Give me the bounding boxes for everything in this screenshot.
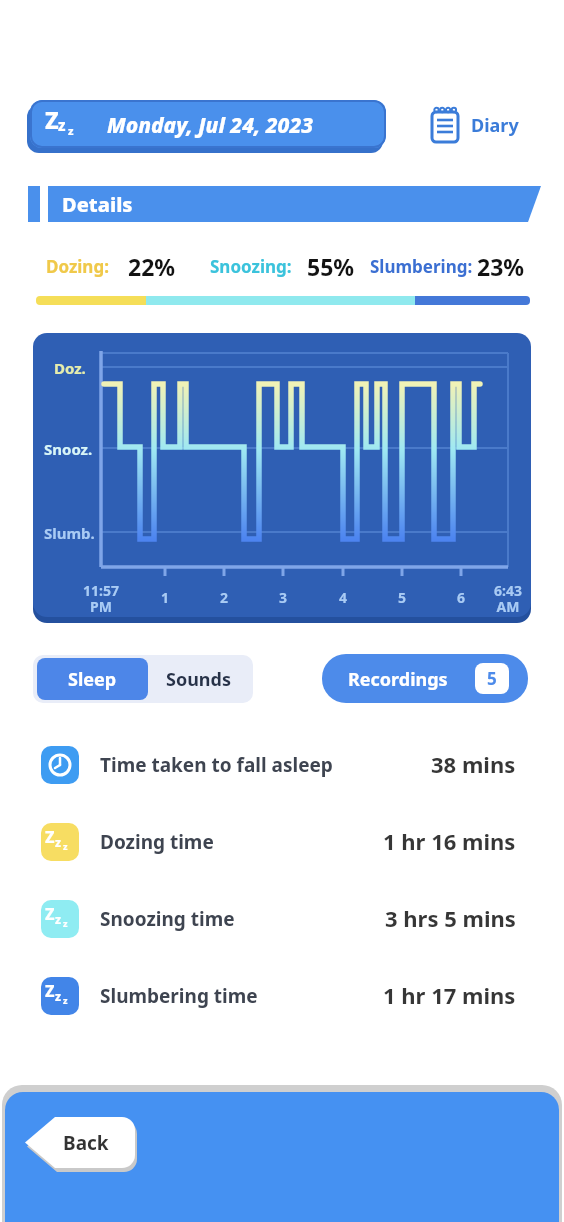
staticText: 3 [273, 588, 293, 607]
staticText: Slumb. [44, 523, 95, 543]
staticText: Z [45, 980, 55, 1002]
button[interactable]: Z [30, 100, 386, 148]
staticText: Back [63, 1130, 109, 1156]
staticText: 4 [333, 588, 353, 607]
staticText: 5 [392, 588, 412, 607]
staticText: Snooz. [44, 439, 93, 459]
staticText: 5 [487, 667, 497, 690]
staticText: 22% [128, 251, 176, 282]
staticText: Z [45, 826, 55, 848]
staticText: Monday, Jul 24, 2023 [70, 111, 350, 140]
staticText: Recordings [348, 667, 448, 692]
staticText: z [63, 917, 68, 929]
button[interactable]: Recordings [322, 654, 528, 703]
staticText: z [68, 123, 74, 138]
staticText: Dozing time [100, 829, 214, 855]
staticText: z [63, 994, 68, 1006]
staticText: z [63, 840, 68, 852]
staticText: PM [79, 597, 123, 616]
staticText: 11:57 [79, 581, 123, 600]
staticText: 1 hr 17 mins [383, 980, 516, 1010]
staticText: 38 mins [431, 749, 516, 779]
staticText: 1 hr 16 mins [383, 826, 516, 856]
staticText: z [55, 834, 61, 850]
staticText: Z [45, 903, 55, 925]
staticText: Details [62, 191, 133, 218]
staticText: z [58, 115, 66, 135]
staticText: Slumbering: [370, 255, 473, 278]
staticText: Snoozing: [210, 255, 292, 278]
button[interactable]: Back [25, 1117, 135, 1168]
button[interactable]: Sleep [37, 658, 148, 700]
staticText: 3 hrs 5 mins [385, 903, 516, 933]
staticText: z [55, 911, 61, 927]
staticText: Snoozing time [100, 906, 235, 932]
staticText: 2 [214, 588, 234, 607]
staticText: 23% [477, 251, 525, 282]
staticText: Slumbering time [100, 983, 258, 1009]
staticText: Z [45, 104, 59, 135]
staticText: Sleep [68, 667, 117, 692]
button[interactable]: Diary [428, 103, 519, 147]
staticText: z [55, 988, 61, 1004]
staticText: Time taken to fall asleep [100, 752, 333, 778]
staticText: Sounds [166, 667, 231, 692]
staticText: 6:43 [486, 581, 530, 600]
button[interactable]: Sounds [148, 658, 249, 700]
staticText: 1 [155, 588, 175, 607]
staticText: Dozing: [46, 255, 109, 278]
staticText: 55% [307, 251, 355, 282]
staticText: 6 [451, 588, 471, 607]
staticText: Diary [471, 113, 519, 138]
staticText: Doz. [54, 358, 86, 378]
staticText: AM [486, 597, 530, 616]
